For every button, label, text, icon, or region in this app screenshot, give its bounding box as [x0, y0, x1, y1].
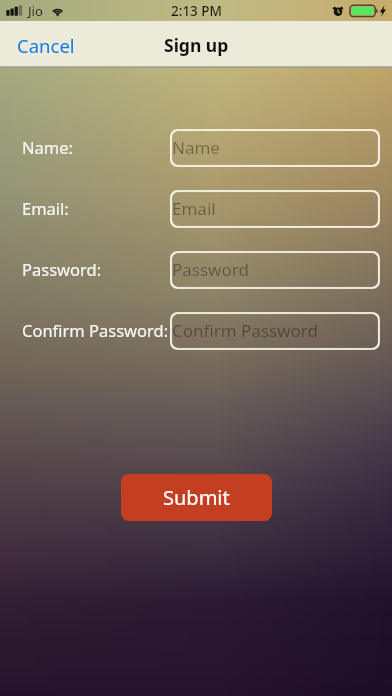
staticText: Name: [22, 136, 73, 158]
staticText: Submit [163, 484, 230, 511]
button[interactable]: Email [170, 190, 380, 228]
button[interactable]: Submit [121, 474, 272, 521]
staticText: Cancel [17, 33, 75, 58]
staticText: Jio [28, 2, 43, 20]
button[interactable]: Cancel [0, 22, 89, 68]
staticText: Password [172, 258, 249, 281]
button[interactable]: Password [170, 251, 380, 289]
staticText: Name [172, 136, 220, 159]
staticText: Email: [22, 197, 69, 219]
staticText: Sign up [164, 33, 229, 57]
button[interactable]: Name [170, 129, 380, 167]
staticText: Password: [22, 258, 102, 280]
staticText: Email [172, 197, 216, 220]
staticText: Confirm Password: [22, 319, 169, 341]
staticText: 2:13 PM [171, 2, 222, 20]
button[interactable]: Confirm Password [170, 312, 380, 350]
staticText: Confirm Password [172, 319, 318, 342]
